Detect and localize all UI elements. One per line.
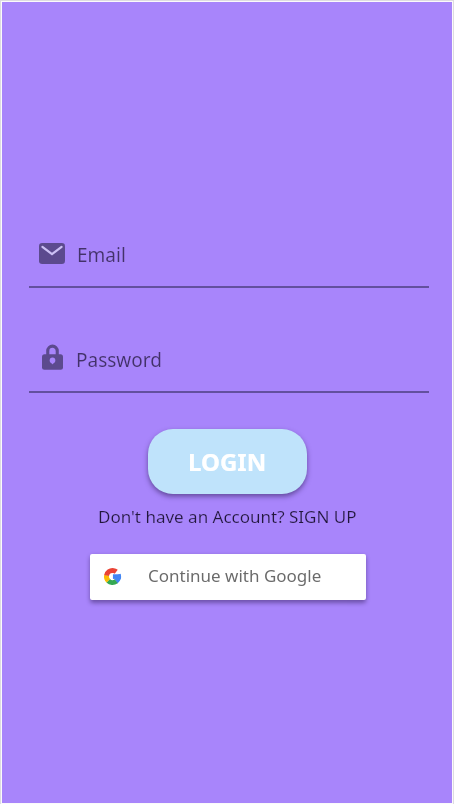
button[interactable]: Password	[29, 336, 429, 394]
staticText: Password	[76, 347, 162, 373]
button[interactable]: Email	[29, 232, 429, 290]
button[interactable]: LOGIN	[148, 429, 307, 494]
staticText: Email	[77, 242, 126, 268]
staticText: Don't have an Account? SIGN UP	[98, 505, 357, 528]
button[interactable]: Don't have an Account? SIGN UP	[98, 505, 357, 528]
staticText: LOGIN	[188, 445, 267, 478]
button[interactable]: Continue with Google	[90, 554, 366, 600]
staticText: Continue with Google	[148, 564, 322, 587]
